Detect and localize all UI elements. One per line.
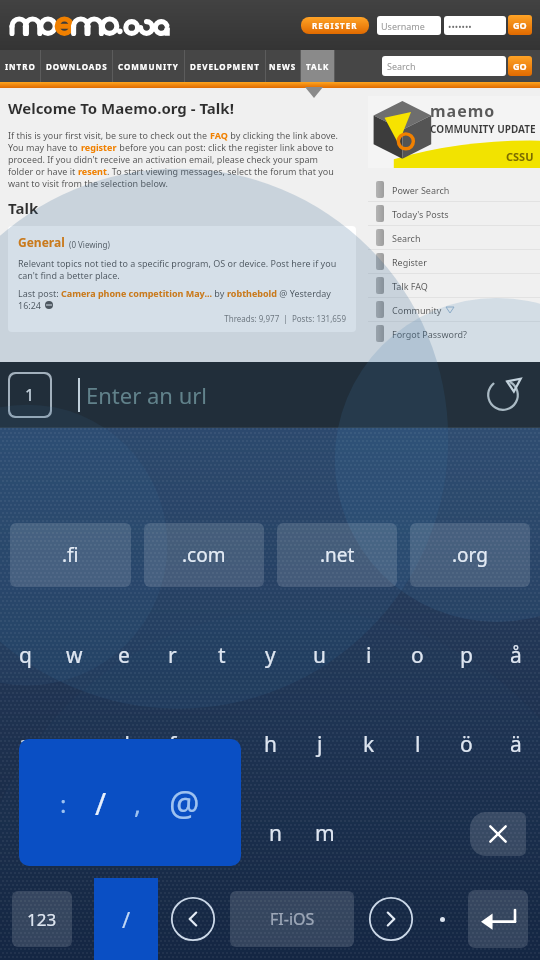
staticText: w	[66, 641, 83, 670]
button[interactable]: s	[50, 700, 99, 789]
button[interactable]: Search	[368, 226, 540, 249]
button[interactable]: TALK	[301, 50, 334, 82]
staticText: DOWNLOADS	[46, 61, 108, 72]
button[interactable]: x	[50, 789, 100, 878]
button[interactable]: •••••••	[444, 16, 506, 35]
button[interactable]: Power Search	[368, 178, 540, 201]
staticText: maemo	[430, 100, 496, 122]
staticText: Welcome To Maemo.org - Talk!	[8, 98, 234, 118]
staticText: Username	[381, 20, 425, 32]
staticText: .fi	[62, 542, 79, 568]
button[interactable]: o	[393, 611, 442, 700]
staticText: o	[411, 641, 424, 670]
staticText: COMMUNITY	[118, 61, 179, 72]
staticText: GO	[513, 19, 527, 31]
button[interactable]: Community	[368, 298, 540, 321]
button[interactable]: Search	[382, 56, 506, 76]
button[interactable]: robthebold	[227, 287, 277, 299]
button[interactable]: Backspace	[470, 812, 526, 856]
staticText: Talk FAQ	[392, 280, 428, 292]
button[interactable]: DOWNLOADS	[41, 50, 112, 82]
button[interactable]: NEWS	[266, 50, 300, 82]
staticText: You may have to	[8, 141, 81, 153]
button[interactable]: t	[197, 611, 246, 700]
staticText: n	[269, 819, 282, 848]
button[interactable]: ä	[491, 700, 540, 789]
button[interactable]: GO	[508, 56, 532, 76]
button[interactable]: e	[99, 611, 148, 700]
button[interactable]: m	[300, 789, 350, 878]
button[interactable]: REGISTER	[301, 17, 369, 34]
button[interactable]: p	[442, 611, 491, 700]
button[interactable]: h	[246, 700, 295, 789]
button[interactable]: Camera phone competition May...	[61, 287, 212, 299]
button[interactable]: register	[81, 141, 117, 153]
button[interactable]: INTRO	[0, 50, 40, 82]
staticText: m	[315, 819, 335, 848]
button[interactable]: Today's Posts	[368, 202, 540, 225]
button[interactable]: i	[344, 611, 393, 700]
button[interactable]: Register	[368, 250, 540, 273]
button[interactable]: Forgot Password?	[368, 322, 540, 345]
button[interactable]: resent	[78, 165, 107, 177]
button[interactable]: General	[8, 226, 356, 332]
staticText: INTRO	[5, 61, 36, 72]
staticText: å	[510, 641, 522, 670]
button[interactable]: Enter an url	[52, 362, 480, 428]
button[interactable]: GO	[508, 15, 532, 35]
staticText: Forgot Password?	[392, 328, 467, 340]
button[interactable]: q	[0, 611, 50, 700]
button[interactable]: g	[197, 700, 246, 789]
button[interactable]: b	[200, 789, 250, 878]
button[interactable]: Tabs	[10, 374, 50, 416]
button[interactable]: :	[19, 739, 241, 866]
staticText: by clicking the link above.	[228, 129, 338, 141]
staticText: .net	[320, 542, 355, 568]
staticText: y	[265, 641, 276, 670]
button[interactable]: v	[150, 789, 200, 878]
staticText: Enter an url	[86, 380, 208, 410]
button[interactable]: .fi	[10, 523, 131, 587]
staticText: .org	[452, 542, 488, 568]
button[interactable]: a	[0, 700, 50, 789]
staticText: If this is your first visit, be sure to …	[8, 129, 210, 141]
staticText: Community	[392, 304, 442, 316]
button[interactable]: c	[100, 789, 150, 878]
staticText: :	[60, 787, 67, 820]
button[interactable]: COMMUNITY	[113, 50, 184, 82]
button[interactable]: .com	[144, 523, 264, 587]
button[interactable]: å	[491, 611, 540, 700]
button[interactable]: DEVELOPMENT	[185, 50, 265, 82]
button[interactable]: .org	[410, 523, 530, 587]
staticText: d	[117, 730, 130, 759]
button[interactable]: z	[0, 789, 50, 878]
button[interactable]: Talk FAQ	[368, 274, 540, 297]
button[interactable]: r	[148, 611, 197, 700]
staticText: Relevant topics not tied to a specific p…	[18, 257, 337, 269]
button[interactable]: d	[99, 700, 148, 789]
button[interactable]: j	[295, 700, 344, 789]
button[interactable]: Username	[377, 16, 441, 35]
button[interactable]: Reload	[480, 372, 526, 418]
button[interactable]: Enter	[468, 890, 528, 948]
button[interactable]: FI-iOS	[230, 891, 354, 947]
staticText: TALK	[306, 61, 330, 72]
button[interactable]: /	[94, 878, 158, 960]
staticText: s	[69, 730, 80, 759]
button[interactable]: u	[295, 611, 344, 700]
button[interactable]: w	[50, 611, 99, 700]
staticText: ä	[510, 730, 522, 759]
button[interactable]: FAQ	[210, 129, 228, 141]
button[interactable]: Next	[368, 896, 414, 942]
button[interactable]: Period	[430, 907, 454, 931]
button[interactable]: k	[344, 700, 393, 789]
button[interactable]: l	[393, 700, 442, 789]
staticText: f	[169, 730, 177, 759]
button[interactable]: ö	[442, 700, 491, 789]
button[interactable]: f	[148, 700, 197, 789]
button[interactable]: n	[250, 789, 300, 878]
button[interactable]: .net	[277, 523, 397, 587]
button[interactable]: y	[246, 611, 295, 700]
button[interactable]: Previous	[170, 896, 216, 942]
button[interactable]: 123	[12, 891, 72, 947]
